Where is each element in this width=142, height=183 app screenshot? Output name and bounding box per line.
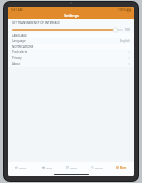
staticText: Home (19, 166, 27, 169)
button[interactable]: Search (84, 162, 109, 173)
staticText: Search (95, 166, 103, 169)
staticText: Push alerts (12, 50, 127, 54)
staticText: Language (12, 39, 120, 43)
staticText: More (120, 166, 127, 169)
button[interactable]: Saved (59, 162, 84, 173)
staticText: 100% (118, 8, 126, 12)
staticText: SET TRANSPARENCY OF INTERFACE (12, 21, 60, 25)
staticText: About (12, 62, 127, 66)
staticText: LANGUAGE (12, 34, 27, 38)
button[interactable]: 100 (8, 26, 134, 33)
button[interactable]: More (109, 162, 134, 173)
button[interactable]: Language (8, 38, 134, 44)
button[interactable]: Home (8, 162, 34, 173)
button[interactable]: Shop (34, 162, 59, 173)
staticText: English (120, 39, 130, 43)
staticText: NOTIFICATIONS (12, 45, 34, 49)
staticText: Shop (46, 166, 52, 169)
staticText: 100 (125, 28, 130, 32)
button[interactable]: Push alerts (8, 49, 134, 55)
button[interactable]: Privacy (8, 55, 134, 61)
staticText: Saved (70, 166, 77, 169)
staticText: Privacy (12, 56, 127, 60)
staticText: Settings (64, 13, 79, 18)
button[interactable]: About (8, 61, 134, 67)
staticText: 9:41 AM (11, 8, 23, 12)
